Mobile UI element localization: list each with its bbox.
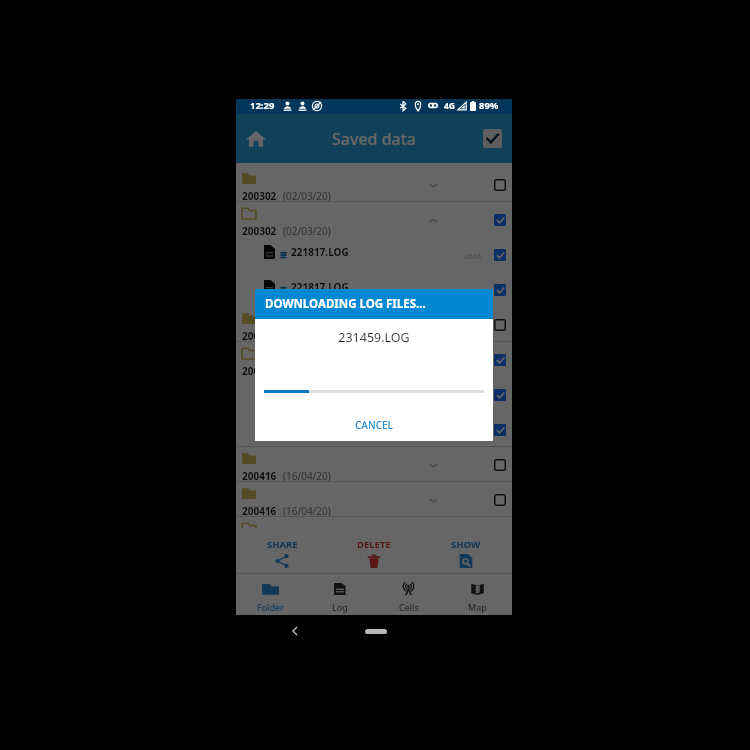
button[interactable]: 200416 — [236, 447, 512, 482]
button[interactable]: Select — [491, 211, 509, 229]
staticText: DOWNLOADING LOG FILES... — [265, 296, 426, 312]
button[interactable]: 200302 — [236, 202, 512, 237]
staticText: 221817.LOG — [291, 280, 349, 294]
button[interactable]: 200416 — [236, 517, 512, 528]
button[interactable]: 200302 — [236, 307, 512, 342]
staticText: (16/04/20) — [283, 504, 331, 518]
staticText: 231459.LOG — [291, 385, 349, 399]
button[interactable]: Select — [491, 351, 509, 369]
button[interactable]: Select — [491, 176, 509, 194]
button[interactable]: Cells — [374, 583, 443, 613]
button[interactable]: Select — [491, 386, 509, 404]
button[interactable]: Back — [286, 622, 304, 640]
staticText: DELETE — [357, 538, 391, 551]
staticText: (16/04/20) — [283, 469, 331, 483]
staticText: 4G — [444, 100, 456, 112]
staticText: 200302 — [242, 189, 277, 203]
staticText: SHOW — [451, 538, 481, 551]
button[interactable]: 221817.LOG — [236, 237, 512, 272]
staticText: 2648 — [464, 286, 482, 296]
staticText: Map — [468, 601, 487, 613]
staticText: 200416 — [242, 504, 277, 518]
staticText: 200302 — [242, 329, 277, 343]
staticText: Folder — [257, 601, 284, 613]
staticText: 231459.LOG — [255, 329, 493, 346]
button[interactable]: Log — [305, 583, 374, 613]
staticText: Saved data — [332, 128, 417, 150]
button[interactable]: 200416 — [236, 482, 512, 517]
staticText: CANCEL — [355, 418, 393, 432]
button[interactable]: 221817.LOG — [236, 272, 512, 307]
staticText: 221817.LOG — [291, 245, 349, 259]
button[interactable]: 200416 — [236, 342, 512, 377]
staticText: 200302 — [242, 224, 277, 238]
staticText: 89% — [479, 99, 499, 112]
button[interactable]: DELETE — [328, 538, 420, 568]
button[interactable]: Home — [365, 629, 387, 634]
staticText: SHARE — [267, 538, 298, 551]
button[interactable]: Select — [491, 281, 509, 299]
button[interactable]: Folder — [236, 583, 305, 613]
button[interactable]: Select — [491, 316, 509, 334]
staticText: 2648 — [464, 251, 482, 261]
staticText: Cells — [399, 601, 419, 613]
button[interactable]: Expand — [422, 209, 444, 231]
staticText: Log — [332, 601, 348, 613]
button[interactable]: Select all — [477, 124, 507, 154]
button[interactable]: 231459.LOG — [236, 377, 512, 412]
button[interactable]: SHOW — [420, 538, 512, 568]
staticText: (02/03/20) — [283, 224, 331, 238]
button[interactable]: Map — [443, 583, 512, 613]
button[interactable]: 200302 — [236, 163, 512, 202]
button[interactable]: Home — [241, 124, 271, 154]
staticText: 200416 — [242, 364, 277, 378]
staticText: (02/03/20) — [283, 189, 331, 203]
button[interactable]: Expand — [422, 314, 444, 336]
button[interactable]: 231459.LOG — [236, 412, 512, 447]
staticText: 1204 — [464, 391, 482, 401]
button[interactable]: Select — [491, 421, 509, 439]
button[interactable]: SHARE — [236, 538, 328, 568]
button[interactable]: Select — [491, 491, 509, 509]
staticText: 12:29 — [250, 99, 275, 112]
button[interactable]: Expand — [422, 454, 444, 476]
button[interactable]: Expand — [422, 174, 444, 196]
staticText: 200416 — [242, 469, 277, 483]
button[interactable]: Select — [491, 456, 509, 474]
button[interactable]: Expand — [422, 489, 444, 511]
button[interactable]: CANCEL — [255, 413, 493, 437]
button[interactable]: Select — [491, 246, 509, 264]
